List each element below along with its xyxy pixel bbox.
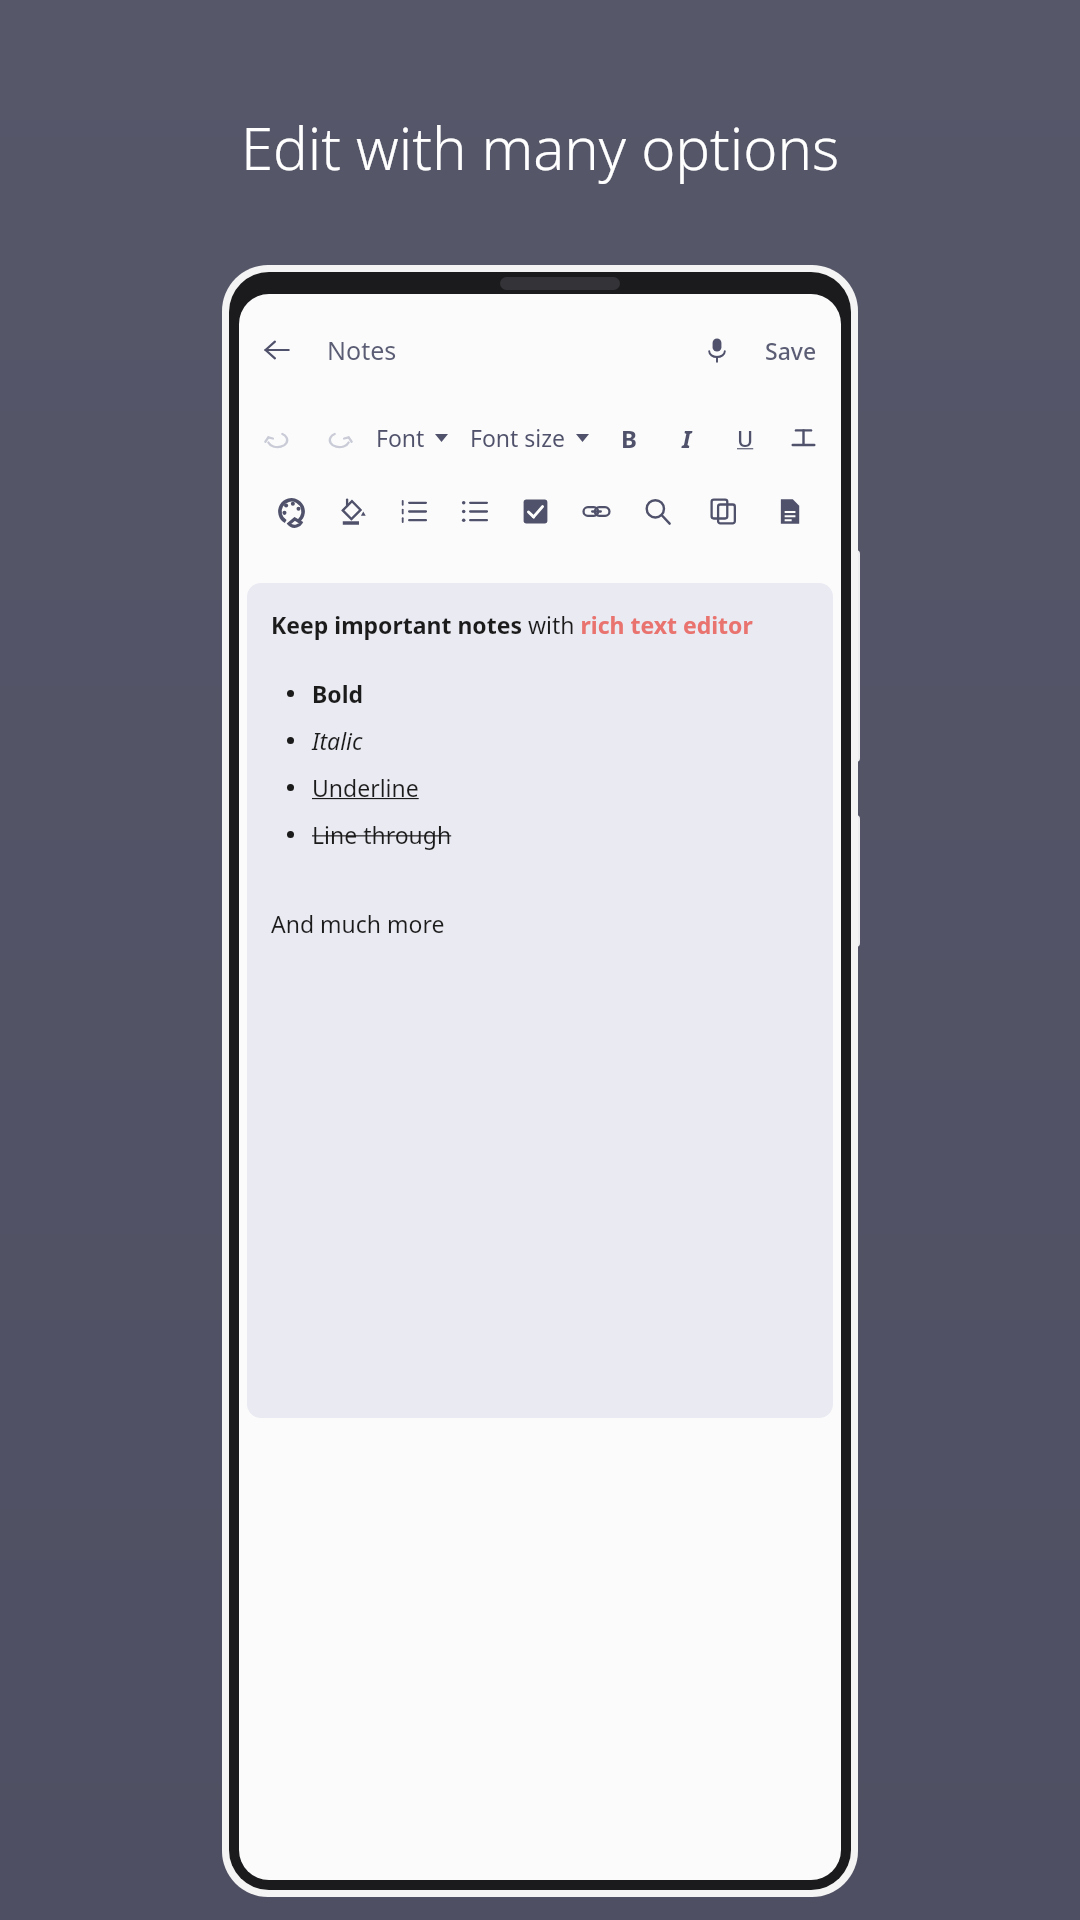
- staticText: U: [737, 423, 754, 453]
- button[interactable]: Font: [370, 412, 454, 463]
- button[interactable]: Redo: [317, 416, 361, 460]
- staticText: Line through: [312, 819, 452, 850]
- button[interactable]: Voice input: [691, 324, 743, 376]
- staticText: Font: [376, 422, 425, 453]
- button[interactable]: Text color palette: [267, 487, 315, 535]
- button[interactable]: Keep important notes with rich text edit…: [247, 583, 833, 1418]
- button[interactable]: Strikethrough: [779, 414, 827, 462]
- button[interactable]: Numbered list: [389, 487, 437, 535]
- button[interactable]: Highlight color: [328, 487, 376, 535]
- button[interactable]: Search: [633, 487, 681, 535]
- staticText: Italic: [312, 725, 363, 756]
- button[interactable]: Copy: [699, 487, 747, 535]
- button[interactable]: Checklist: [511, 487, 559, 535]
- staticText: Keep important notes with rich text edit…: [271, 609, 753, 640]
- button[interactable]: Undo: [255, 416, 299, 460]
- staticText: Font size: [470, 422, 566, 453]
- staticText: Edit with many options: [241, 108, 840, 187]
- button[interactable]: Bullet list: [450, 487, 498, 535]
- button[interactable]: I: [663, 414, 711, 462]
- staticText: Bold: [312, 678, 364, 709]
- button[interactable]: U: [721, 414, 769, 462]
- button[interactable]: Back: [253, 326, 301, 374]
- button[interactable]: Document: [765, 487, 813, 535]
- button[interactable]: Font size: [464, 412, 595, 463]
- staticText: Save: [765, 335, 817, 366]
- staticText: And much more: [271, 908, 445, 939]
- staticText: Notes: [327, 333, 397, 367]
- button[interactable]: Insert link: [572, 487, 620, 535]
- staticText: I: [682, 422, 692, 455]
- staticText: Underline: [312, 772, 419, 803]
- button[interactable]: Save: [757, 325, 825, 376]
- staticText: B: [621, 422, 637, 455]
- button[interactable]: B: [605, 414, 653, 462]
